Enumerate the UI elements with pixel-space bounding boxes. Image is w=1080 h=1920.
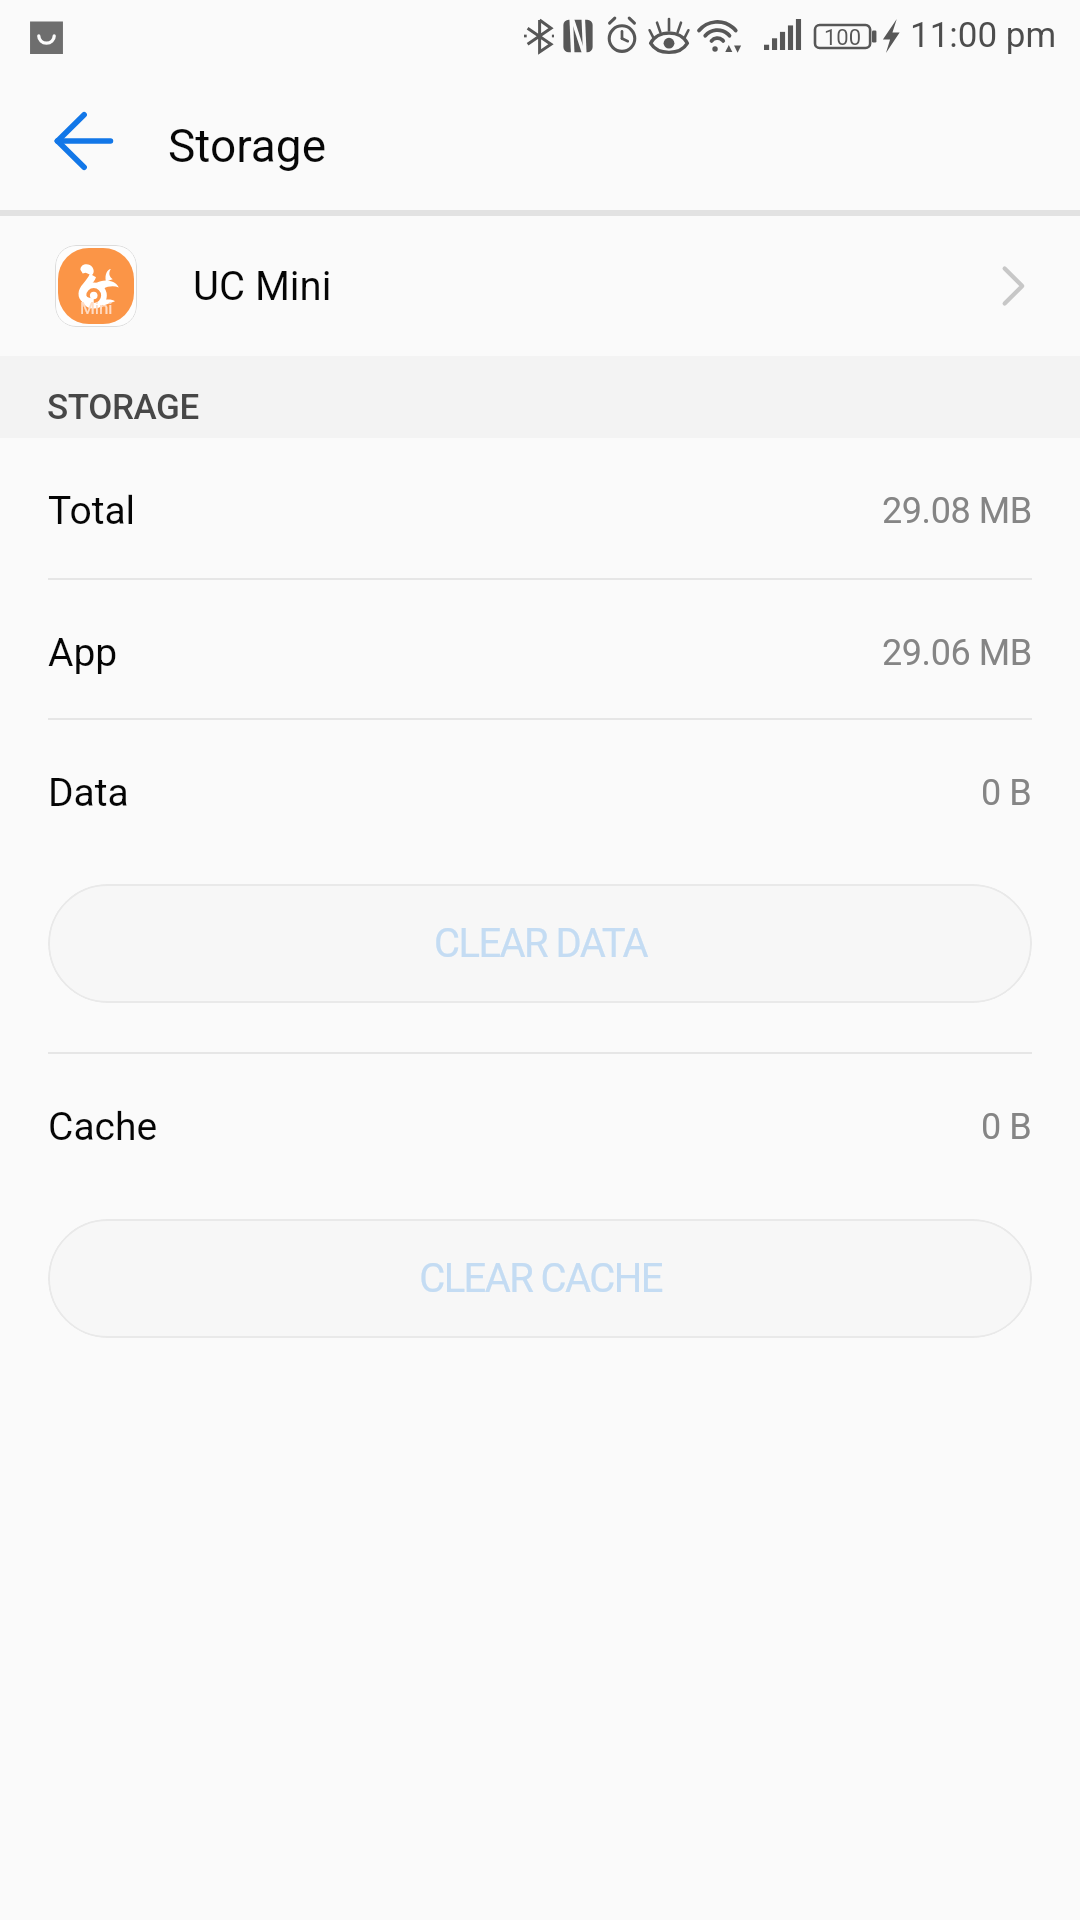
staticText: 100 (824, 25, 862, 48)
button[interactable]: App (0, 580, 1080, 718)
button[interactable]: Mini (0, 216, 1080, 356)
staticText: 0 B (981, 1106, 1032, 1148)
button[interactable]: CLEAR DATA (48, 884, 1032, 1003)
staticText: Storage (168, 119, 327, 173)
button[interactable]: Back (32, 90, 134, 192)
staticText: 11:00 pm (910, 15, 1057, 56)
staticText: App (48, 630, 118, 676)
button[interactable]: Total (0, 438, 1080, 576)
staticText: CLEAR DATA (434, 920, 647, 967)
staticText: Mini (80, 298, 113, 318)
button[interactable]: Cache (0, 1054, 1080, 1192)
staticText: Total (48, 488, 136, 534)
button[interactable]: CLEAR CACHE (48, 1219, 1032, 1338)
staticText: 29.08 MB (882, 490, 1032, 532)
staticText: Cache (48, 1104, 158, 1150)
staticText: 0 B (981, 772, 1032, 814)
staticText: CLEAR CACHE (419, 1255, 662, 1302)
button[interactable]: Data (0, 720, 1080, 858)
staticText: 29.06 MB (882, 632, 1032, 674)
staticText: STORAGE (47, 387, 199, 428)
staticText: Data (48, 770, 129, 816)
staticText: UC Mini (193, 263, 332, 310)
